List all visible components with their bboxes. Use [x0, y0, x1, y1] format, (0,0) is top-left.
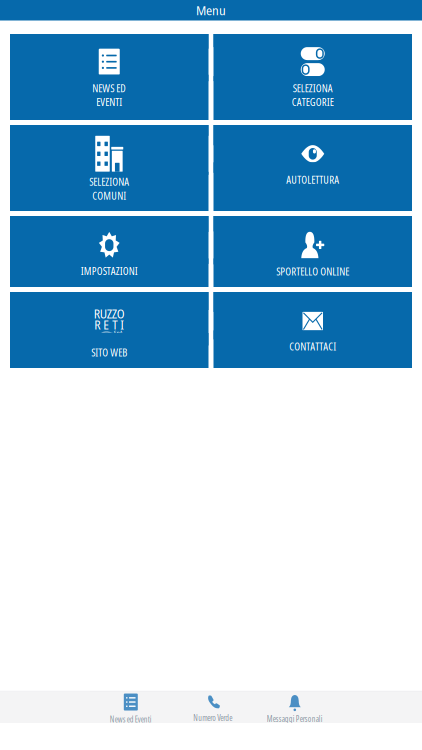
- button[interactable]: AUTOLETTURA: [213, 125, 412, 211]
- staticText: SELEZIONA: [89, 174, 129, 189]
- staticText: R E T I: [94, 316, 124, 333]
- staticText: CONTATTACI: [289, 339, 336, 353]
- button[interactable]: CONTATTACI: [213, 292, 412, 368]
- button[interactable]: Numero Verde: [172, 691, 254, 723]
- button[interactable]: IMPOSTAZIONI: [10, 216, 208, 287]
- staticText: SPORTELLO ONLINE: [276, 264, 349, 278]
- staticText: IMPOSTAZIONI: [81, 263, 138, 278]
- staticText: News ed Eventi: [110, 714, 152, 725]
- staticText: CATEGORIE: [292, 94, 334, 109]
- staticText: EVENTI: [96, 95, 122, 109]
- button[interactable]: NEWS ED: [10, 34, 208, 120]
- staticText: AUTOLETTURA: [286, 172, 339, 187]
- staticText: Menu: [196, 1, 226, 19]
- staticText: COMUNI: [92, 188, 126, 203]
- button[interactable]: News ed Eventi: [90, 691, 172, 723]
- button[interactable]: SELEZIONA: [213, 34, 412, 120]
- button[interactable]: SPORTELLO ONLINE: [213, 216, 412, 287]
- button[interactable]: Messaggi Personali: [254, 691, 336, 723]
- staticText: RUZZO: [94, 305, 125, 322]
- staticText: SELEZIONA: [293, 81, 333, 95]
- staticText: SpA: [114, 329, 123, 336]
- staticText: NEWS ED: [92, 81, 126, 95]
- staticText: Numero Verde: [193, 713, 232, 723]
- button[interactable]: RUZZO: [10, 292, 208, 368]
- button[interactable]: SELEZIONA: [10, 125, 208, 211]
- staticText: Messaggi Personali: [267, 714, 323, 724]
- staticText: SITO WEB: [91, 345, 127, 360]
